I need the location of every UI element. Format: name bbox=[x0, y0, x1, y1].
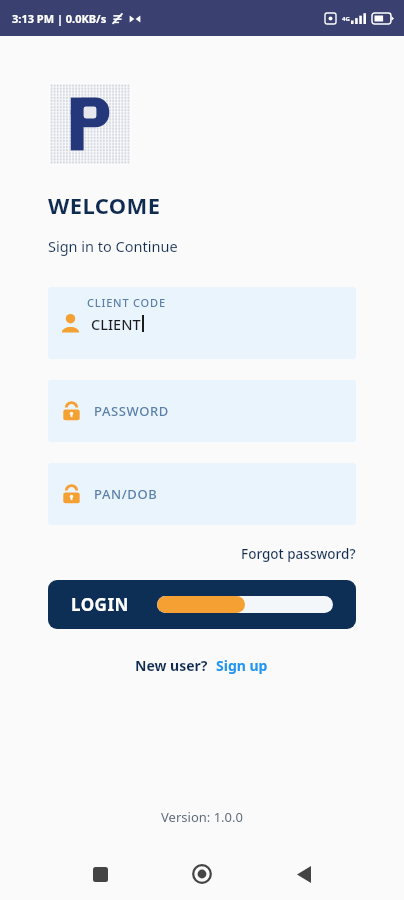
button[interactable]: Recent apps bbox=[78, 852, 122, 896]
button[interactable]: Forgot password? bbox=[231, 541, 366, 567]
button[interactable]: Sign up bbox=[214, 653, 270, 678]
staticText: Forgot password? bbox=[241, 545, 356, 563]
staticText: PASSWORD bbox=[94, 402, 169, 420]
staticText: CLIENT bbox=[91, 314, 141, 334]
staticText: CLIENT CODE bbox=[87, 295, 166, 310]
staticText: 3:13 PM | 0.0KB/s bbox=[12, 11, 107, 26]
staticText: PAN/DOB bbox=[94, 485, 158, 503]
staticText: Sign up bbox=[216, 656, 268, 675]
button[interactable]: PASSWORD bbox=[48, 380, 356, 442]
staticText: WELCOME bbox=[48, 190, 161, 220]
staticText: Version: 1.0.0 bbox=[0, 808, 404, 826]
staticText: LOGIN bbox=[71, 593, 129, 616]
staticText: Sign in to Continue bbox=[48, 236, 178, 256]
button[interactable]: LOGIN bbox=[48, 580, 356, 629]
button[interactable]: PAN/DOB bbox=[48, 463, 356, 525]
button[interactable]: CLIENT CODE bbox=[48, 287, 356, 359]
staticText: New user? bbox=[135, 656, 208, 675]
button[interactable]: Back bbox=[282, 852, 326, 896]
staticText: 4G bbox=[342, 15, 350, 23]
button[interactable]: Home bbox=[180, 852, 224, 896]
